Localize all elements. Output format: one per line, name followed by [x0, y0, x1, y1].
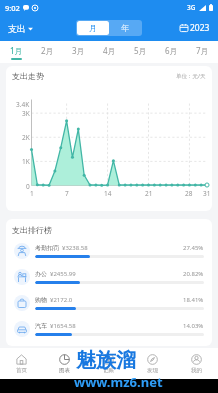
- staticText: 5月: [134, 45, 147, 56]
- staticText: 2023: [190, 22, 210, 34]
- staticText: 28: [185, 189, 193, 197]
- staticText: 支出走势: [12, 71, 44, 81]
- staticText: 2K: [22, 133, 30, 141]
- staticText: ¥2172.0: [50, 296, 73, 304]
- staticText: 1: [30, 189, 34, 197]
- button[interactable]: 购物: [14, 290, 204, 316]
- staticText: 7: [65, 189, 69, 197]
- staticText: 31: [203, 189, 211, 197]
- button[interactable]: 考勤扣罚: [14, 238, 204, 264]
- button[interactable]: 5月: [125, 41, 156, 63]
- staticText: 3K: [22, 109, 30, 117]
- button[interactable]: 4月: [94, 41, 125, 63]
- button[interactable]: 记账: [86, 348, 130, 379]
- staticText: ¥2455.99: [50, 270, 76, 278]
- staticText: 我的: [191, 367, 202, 374]
- staticText: 1K: [22, 157, 30, 165]
- staticText: 月: [89, 23, 97, 33]
- button[interactable]: 2023: [177, 19, 213, 37]
- staticText: ¥1654.58: [50, 322, 76, 330]
- staticText: 办公: [35, 270, 47, 278]
- staticText: 支出: [8, 23, 26, 34]
- staticText: 6月: [165, 45, 178, 56]
- button[interactable]: 年: [109, 21, 141, 35]
- button[interactable]: 发现: [130, 348, 174, 379]
- staticText: ¥3238.58: [62, 244, 88, 252]
- staticText: 年: [121, 23, 129, 33]
- button[interactable]: 6月: [156, 41, 187, 63]
- staticText: 1月: [10, 45, 23, 56]
- staticText: 18.41%: [183, 296, 204, 304]
- staticText: 0: [26, 182, 30, 190]
- staticText: 记账: [103, 367, 114, 374]
- staticText: 图表: [59, 367, 70, 374]
- staticText: 9:02: [5, 3, 20, 13]
- staticText: 首页: [16, 367, 27, 374]
- staticText: 考勤扣罚: [35, 244, 59, 252]
- button[interactable]: 2月: [32, 41, 63, 63]
- button[interactable]: 我的: [174, 348, 218, 379]
- staticText: 支出排行榜: [12, 225, 52, 235]
- button[interactable]: 月: [77, 21, 109, 35]
- staticText: www.mz6.net: [74, 373, 163, 391]
- staticText: 14.03%: [183, 322, 204, 330]
- button[interactable]: 汽车: [14, 316, 204, 342]
- staticText: 2月: [41, 45, 54, 56]
- staticText: 魅族溜: [76, 348, 136, 373]
- button[interactable]: 7月: [187, 41, 218, 63]
- staticText: 3G: [187, 3, 196, 12]
- staticText: 27.45%: [183, 244, 204, 252]
- button[interactable]: 支出: [5, 20, 36, 37]
- staticText: 发现: [147, 367, 158, 374]
- staticText: 20.82%: [183, 270, 204, 278]
- staticText: 21: [145, 189, 153, 197]
- staticText: 7月: [196, 45, 209, 56]
- staticText: 汽车: [35, 322, 47, 330]
- staticText: 3.4K: [16, 100, 30, 108]
- staticText: 单位：元/天: [176, 72, 206, 80]
- button[interactable]: 图表: [43, 348, 86, 379]
- button[interactable]: 1月: [0, 41, 32, 63]
- button[interactable]: 首页: [0, 348, 43, 379]
- staticText: 3月: [72, 45, 85, 56]
- button[interactable]: 办公: [14, 264, 204, 290]
- staticText: 14: [104, 189, 112, 197]
- staticText: 4月: [103, 45, 116, 56]
- button[interactable]: 3月: [63, 41, 94, 63]
- staticText: 购物: [35, 296, 47, 304]
